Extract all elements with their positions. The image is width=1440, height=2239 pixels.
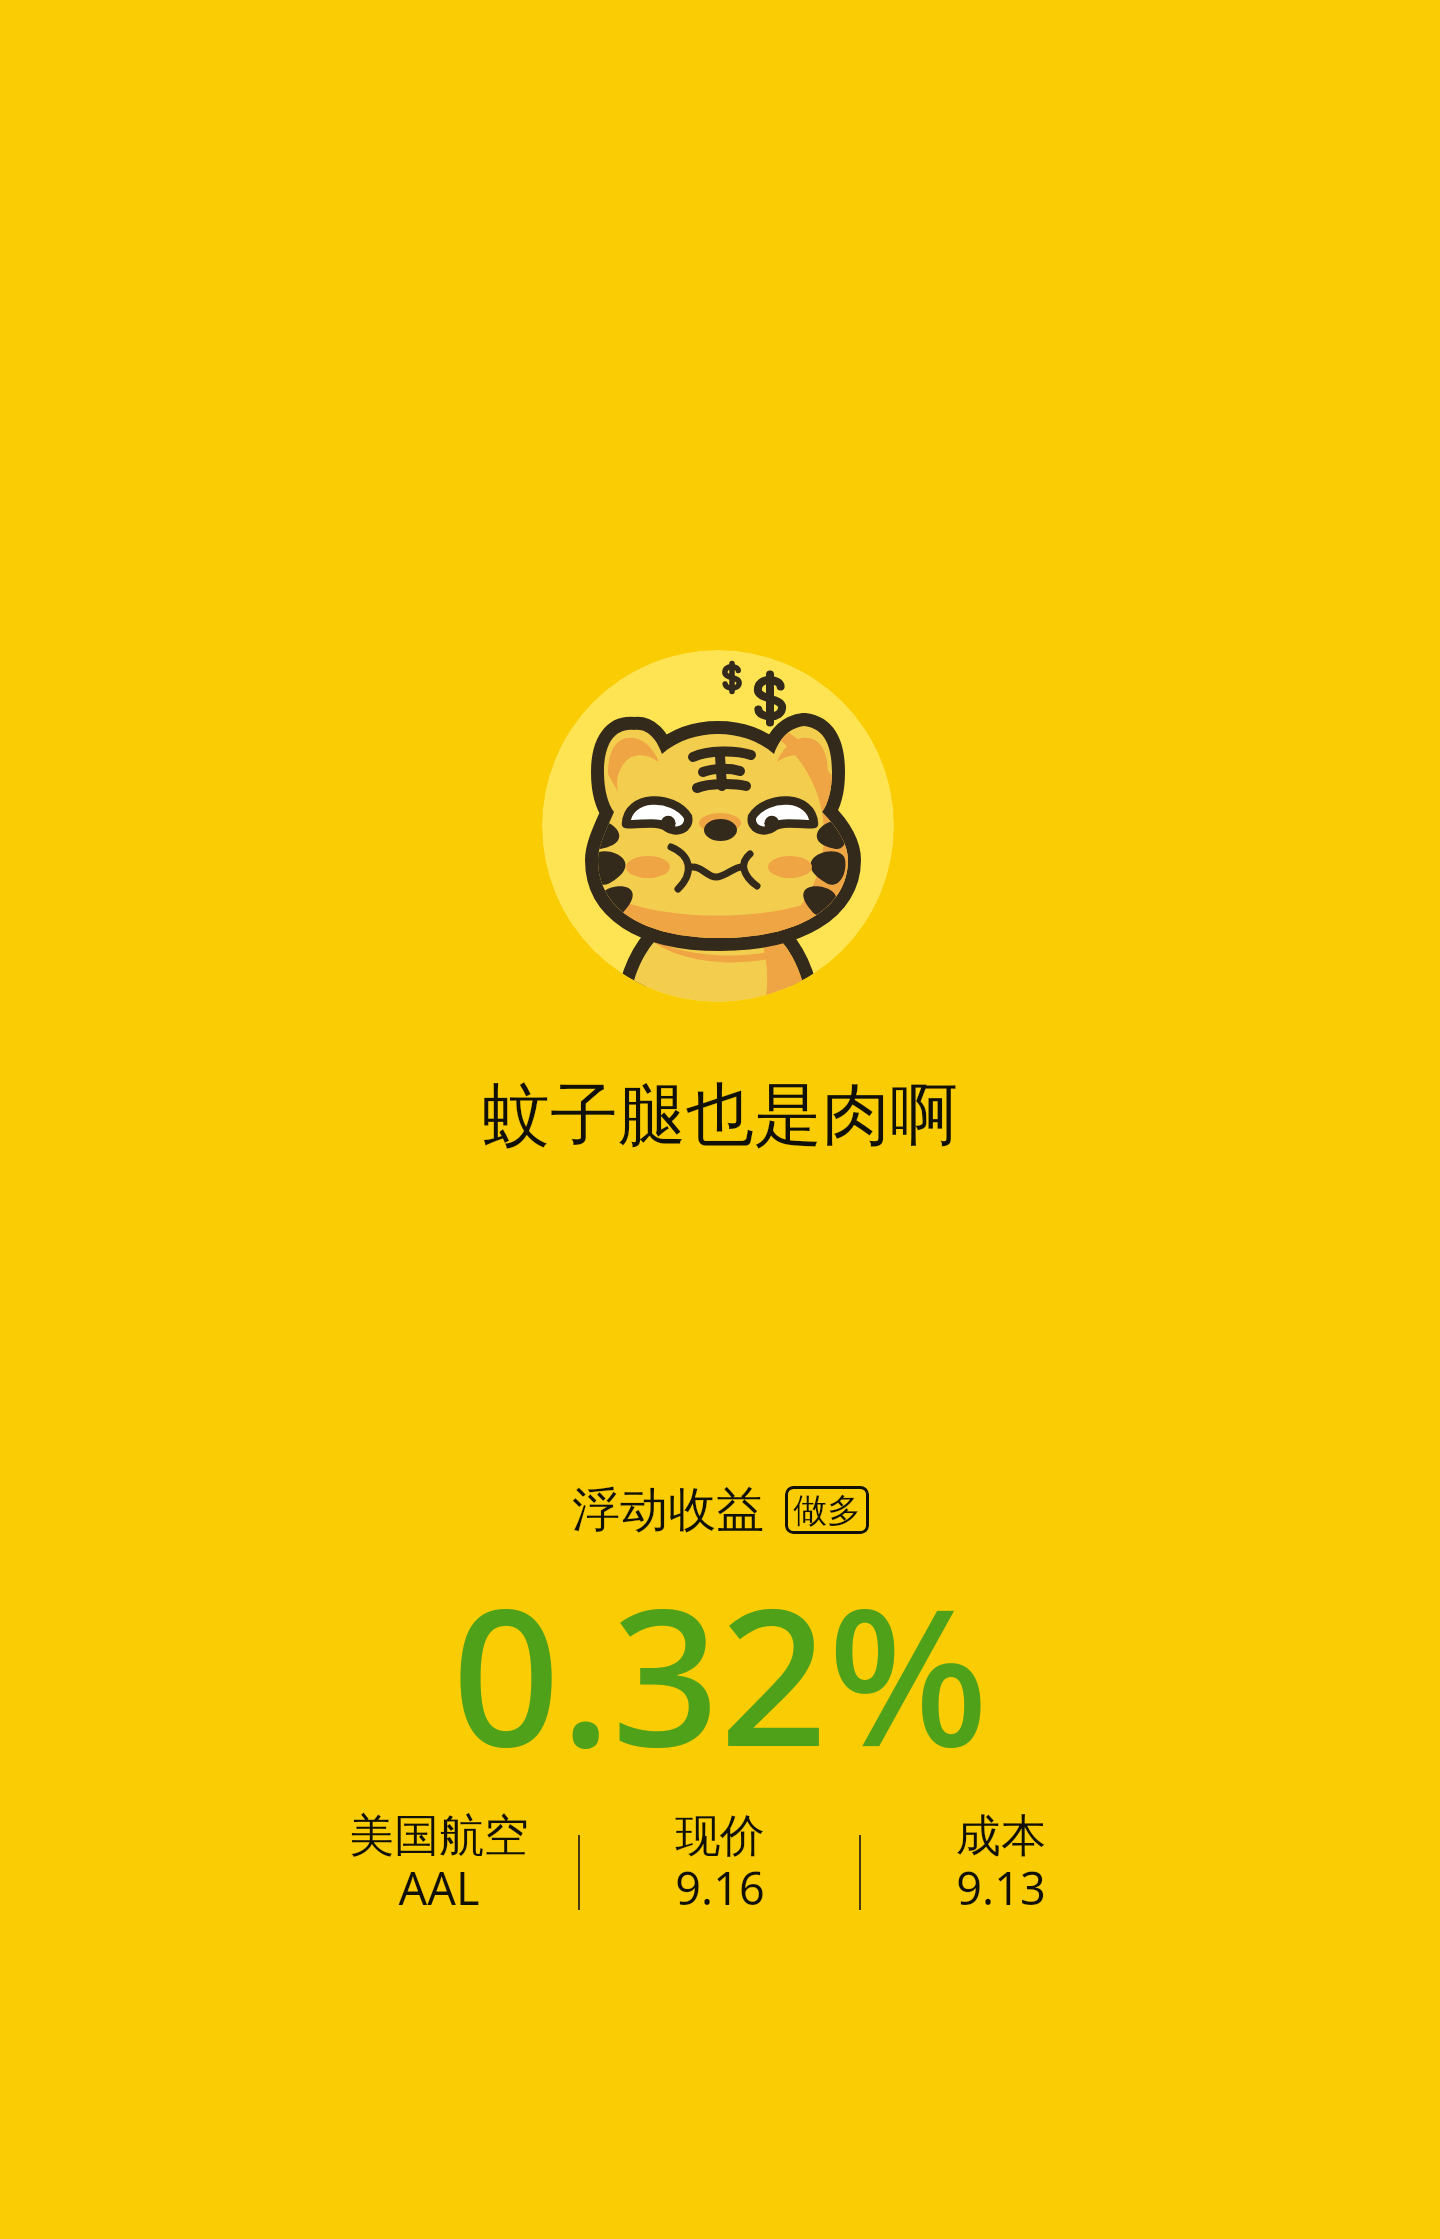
button[interactable]: 0.32%: [452, 1544, 989, 1801]
staticText: 现价: [675, 1808, 765, 1865]
button[interactable]: 做多: [785, 1486, 869, 1534]
button[interactable]: 成本: [861, 1808, 1140, 1926]
staticText: 9.13: [956, 1857, 1046, 1918]
staticText: 9.16: [675, 1857, 765, 1918]
staticText: 美国航空: [349, 1808, 529, 1865]
button[interactable]: Tiger mascot avatar: [542, 650, 894, 1002]
staticText: 浮动收益: [572, 1480, 764, 1540]
staticText: AAL: [398, 1857, 480, 1918]
button[interactable]: 蚊子腿也是肉啊: [474, 1073, 966, 1159]
staticText: 做多: [793, 1489, 861, 1532]
button[interactable]: 现价: [580, 1808, 859, 1926]
staticText: 成本: [956, 1808, 1046, 1865]
button[interactable]: 美国航空: [300, 1808, 578, 1926]
